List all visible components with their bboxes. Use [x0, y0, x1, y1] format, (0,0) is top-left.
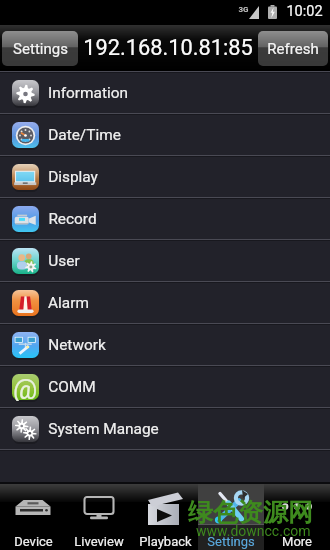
- staticText: Network: [48, 336, 106, 354]
- other: Device: [14, 492, 52, 528]
- button[interactable]: @: [0, 367, 330, 407]
- other: Playback: [146, 492, 184, 528]
- staticText: 10:02: [286, 3, 323, 20]
- button[interactable]: Playback: [132, 482, 198, 550]
- staticText: Settings: [207, 534, 255, 549]
- button[interactable]: Refresh: [258, 31, 328, 66]
- staticText: Date/Time: [48, 126, 121, 144]
- other: Settings: [212, 492, 250, 528]
- staticText: Settings: [13, 40, 68, 58]
- button[interactable]: Network: [0, 325, 330, 365]
- button[interactable]: Display: [0, 157, 330, 197]
- staticText: System Manage: [48, 420, 159, 438]
- button[interactable]: System Manage: [0, 409, 330, 449]
- staticText: 3G: [238, 5, 249, 14]
- button[interactable]: Settings: [2, 31, 78, 66]
- staticText: Refresh: [267, 40, 319, 58]
- button[interactable]: Alarm: [0, 283, 330, 323]
- button[interactable]: Liveview: [66, 482, 132, 550]
- staticText: @: [13, 374, 38, 401]
- button[interactable]: Date/Time: [0, 115, 330, 155]
- staticText: 192.168.10.81:85: [83, 35, 253, 61]
- staticText: Record: [48, 210, 97, 228]
- staticText: Liveview: [74, 534, 124, 549]
- other: Liveview: [80, 492, 118, 528]
- button[interactable]: Settings: [198, 482, 264, 550]
- staticText: 绿色资源网: [188, 497, 313, 528]
- button[interactable]: Information: [0, 73, 330, 113]
- staticText: Device: [14, 534, 53, 549]
- button[interactable]: Record: [0, 199, 330, 239]
- staticText: www.downcc.com: [196, 523, 311, 539]
- other: More: [278, 492, 316, 528]
- staticText: Information: [48, 84, 128, 102]
- button[interactable]: Device: [0, 482, 66, 550]
- button[interactable]: More: [264, 482, 330, 550]
- staticText: User: [48, 252, 80, 270]
- staticText: Alarm: [48, 294, 89, 312]
- staticText: Playback: [139, 534, 192, 549]
- staticText: COMM: [48, 378, 96, 396]
- staticText: Display: [48, 168, 98, 186]
- button[interactable]: User: [0, 241, 330, 281]
- staticText: More: [282, 534, 312, 549]
